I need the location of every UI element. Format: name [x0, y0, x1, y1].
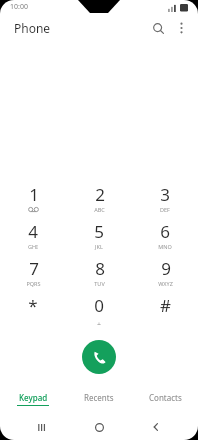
staticText: + — [97, 320, 102, 325]
button[interactable]: 0 — [66, 288, 132, 325]
staticText: 6 — [160, 220, 170, 243]
button[interactable]: 5 — [66, 214, 132, 251]
button[interactable]: 7 — [0, 251, 66, 288]
staticText: 4 — [28, 220, 38, 243]
staticText: JKL — [95, 243, 103, 250]
staticText: DEF — [160, 206, 170, 213]
button[interactable]: Recents — [32, 417, 52, 437]
staticText: 2 — [95, 183, 105, 206]
button[interactable]: # — [132, 288, 198, 325]
button[interactable]: 8 — [66, 251, 132, 288]
button[interactable]: Search — [146, 16, 170, 40]
button[interactable]: 9 — [132, 251, 198, 288]
staticText: 8 — [95, 257, 105, 280]
button[interactable]: 1 — [0, 177, 66, 214]
button[interactable]: 3 — [132, 177, 198, 214]
button[interactable]: Home — [89, 417, 109, 437]
staticText: GHI — [28, 243, 38, 250]
staticText: 10:00 — [10, 2, 28, 12]
staticText: 7 — [29, 257, 39, 280]
button[interactable]: * — [0, 288, 66, 325]
button[interactable]: Keypad — [0, 390, 66, 412]
staticText: # — [160, 294, 171, 317]
staticText: 5 — [94, 220, 104, 243]
staticText: 1 — [29, 183, 39, 206]
staticText: MNO — [158, 243, 172, 250]
button[interactable]: 4 — [0, 214, 66, 251]
button[interactable]: 6 — [132, 214, 198, 251]
staticText: ABC — [94, 206, 105, 213]
button[interactable]: Contacts — [132, 390, 198, 412]
staticText: 3 — [160, 183, 170, 206]
staticText: PQRS — [26, 280, 41, 287]
staticText: Keypad — [19, 392, 48, 403]
button[interactable]: More options — [170, 17, 192, 39]
button[interactable]: Call — [82, 340, 116, 374]
button[interactable]: Back — [146, 417, 166, 437]
staticText: Recents — [84, 392, 114, 403]
staticText: WXYZ — [158, 280, 173, 287]
staticText: 0 — [94, 294, 104, 317]
staticText: * — [28, 294, 38, 317]
button[interactable]: Recents — [66, 390, 132, 412]
staticText: Contacts — [149, 392, 182, 403]
staticText: 9 — [161, 257, 171, 280]
staticText: TUV — [94, 280, 105, 287]
staticText: Phone — [14, 20, 51, 36]
button[interactable]: 2 — [66, 177, 132, 214]
